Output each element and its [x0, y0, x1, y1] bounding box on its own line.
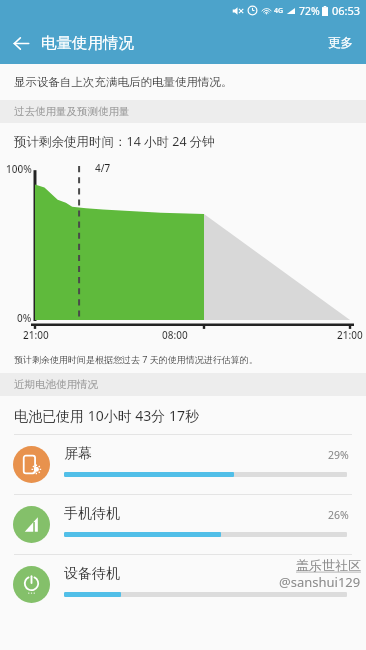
staticText: 4G [274, 6, 284, 16]
button[interactable]: 屏幕 [0, 434, 366, 494]
staticText: 电量使用情况 [41, 33, 134, 53]
staticText: 06:53 [332, 3, 361, 18]
button[interactable]: 手机待机 [0, 494, 366, 554]
staticText: 电池已使用 10小时 43分 17秒 [14, 406, 199, 425]
button[interactable]: 设备待机 [0, 554, 366, 614]
staticText: 更多 [328, 35, 353, 51]
staticText: 设备待机 [64, 565, 120, 583]
staticText: 100% [6, 162, 32, 176]
button[interactable]: 更多 [315, 24, 366, 62]
staticText: 0% [17, 311, 32, 325]
staticText: 26% [328, 508, 349, 522]
staticText: 盖乐世社区 [296, 557, 361, 573]
button[interactable]: Back [0, 22, 42, 64]
staticText: 屏幕 [64, 445, 92, 463]
staticText: 手机待机 [64, 505, 120, 523]
staticText: 显示设备自上次充满电后的电量使用情况。 [14, 75, 233, 89]
staticText: 21:00 [23, 328, 49, 342]
staticText: 21:00 [337, 328, 363, 342]
staticText: 4/7 [95, 161, 111, 175]
staticText: 预计剩余使用时间是根据您过去 7 天的使用情况进行估算的。 [14, 353, 258, 365]
staticText: 预计剩余使用时间：14 小时 24 分钟 [14, 133, 215, 150]
staticText: @sanshui129 [279, 573, 361, 591]
staticText: 72% [299, 4, 320, 18]
staticText: 08:00 [162, 328, 188, 342]
staticText: 近期电池使用情况 [14, 378, 98, 391]
staticText: 29% [328, 448, 349, 462]
staticText: 过去使用量及预测使用量 [14, 105, 130, 118]
